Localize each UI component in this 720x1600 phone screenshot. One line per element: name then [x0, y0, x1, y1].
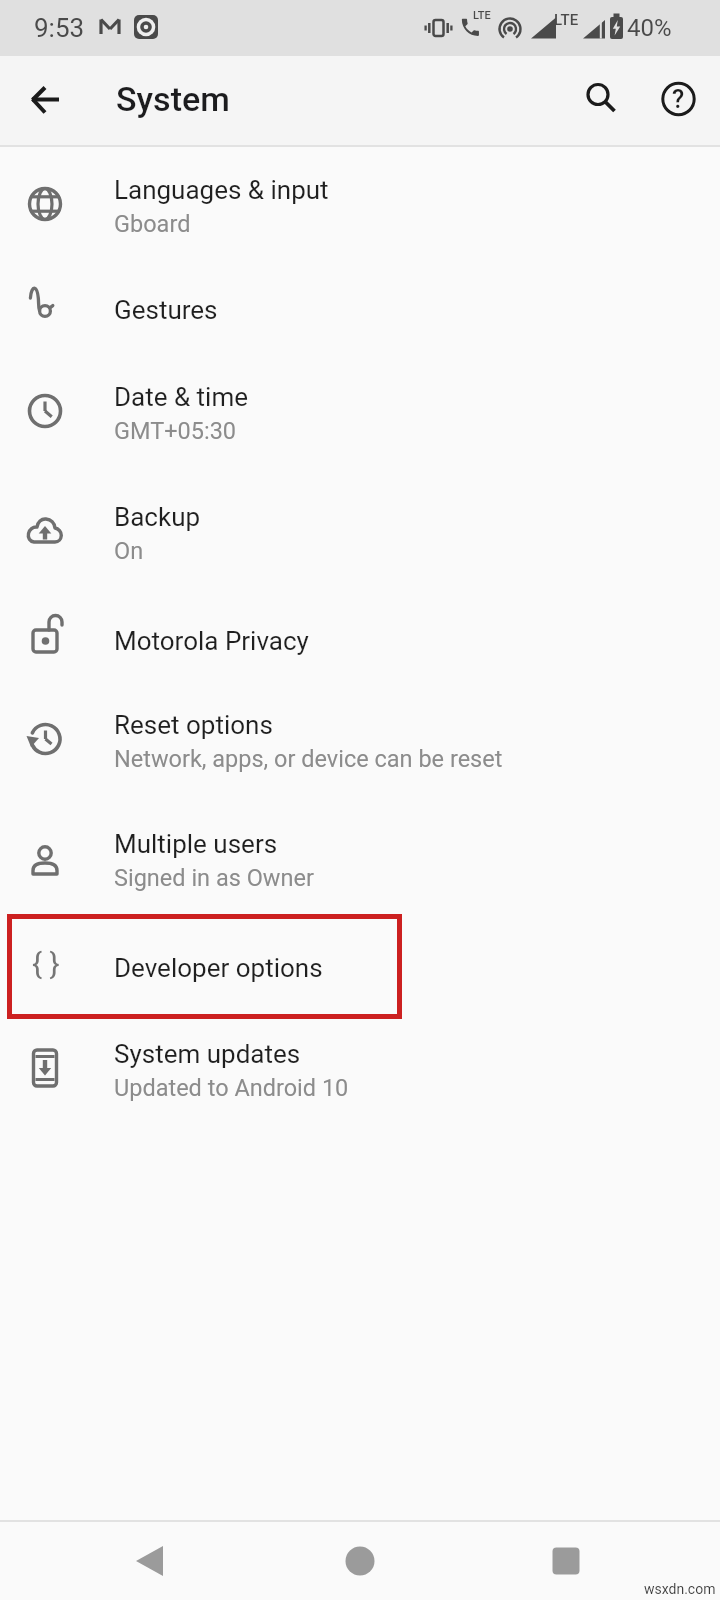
staticText: Gboard	[114, 210, 191, 238]
button[interactable]: Languages & input	[0, 154, 720, 254]
button[interactable]	[570, 70, 628, 128]
button[interactable]: Motorola Privacy	[0, 586, 720, 686]
staticText: wsxdn.com	[644, 1581, 716, 1597]
button[interactable]: System updates	[0, 1018, 720, 1118]
staticText: Backup	[114, 502, 201, 532]
button[interactable]: Gestures	[0, 255, 720, 355]
staticText: Motorola Privacy	[114, 626, 309, 656]
staticText: System	[116, 79, 230, 119]
staticText: Date & time	[114, 382, 248, 412]
staticText: On	[114, 537, 144, 565]
staticText: Network, apps, or device can be reset	[114, 745, 503, 773]
button[interactable]: Backup	[0, 481, 720, 581]
button[interactable]: Developer options	[0, 913, 720, 1013]
staticText: System updates	[114, 1039, 301, 1069]
button[interactable]: Date & time	[0, 361, 720, 461]
staticText: Signed in as Owner	[114, 864, 314, 892]
button[interactable]: Multiple users	[0, 808, 720, 908]
button[interactable]: ?	[650, 70, 708, 128]
button[interactable]	[526, 1522, 606, 1600]
staticText: Gestures	[114, 295, 218, 325]
staticText: Updated to Android 10	[114, 1074, 349, 1102]
staticText: Reset options	[114, 710, 273, 740]
staticText: 9:53	[34, 13, 85, 43]
staticText: LTE	[473, 9, 491, 22]
staticText: ?	[672, 85, 685, 114]
staticText: { }	[32, 946, 60, 981]
staticText: 40%	[627, 14, 672, 42]
staticText: Languages & input	[114, 175, 329, 205]
staticText: GMT+05:30	[114, 417, 237, 445]
button[interactable]	[110, 1522, 190, 1600]
button[interactable]: Reset options	[0, 689, 720, 789]
staticText: LTE	[554, 11, 579, 29]
button[interactable]	[320, 1522, 400, 1600]
staticText: Developer options	[114, 953, 323, 983]
button[interactable]	[18, 72, 74, 128]
staticText: Multiple users	[114, 829, 278, 859]
